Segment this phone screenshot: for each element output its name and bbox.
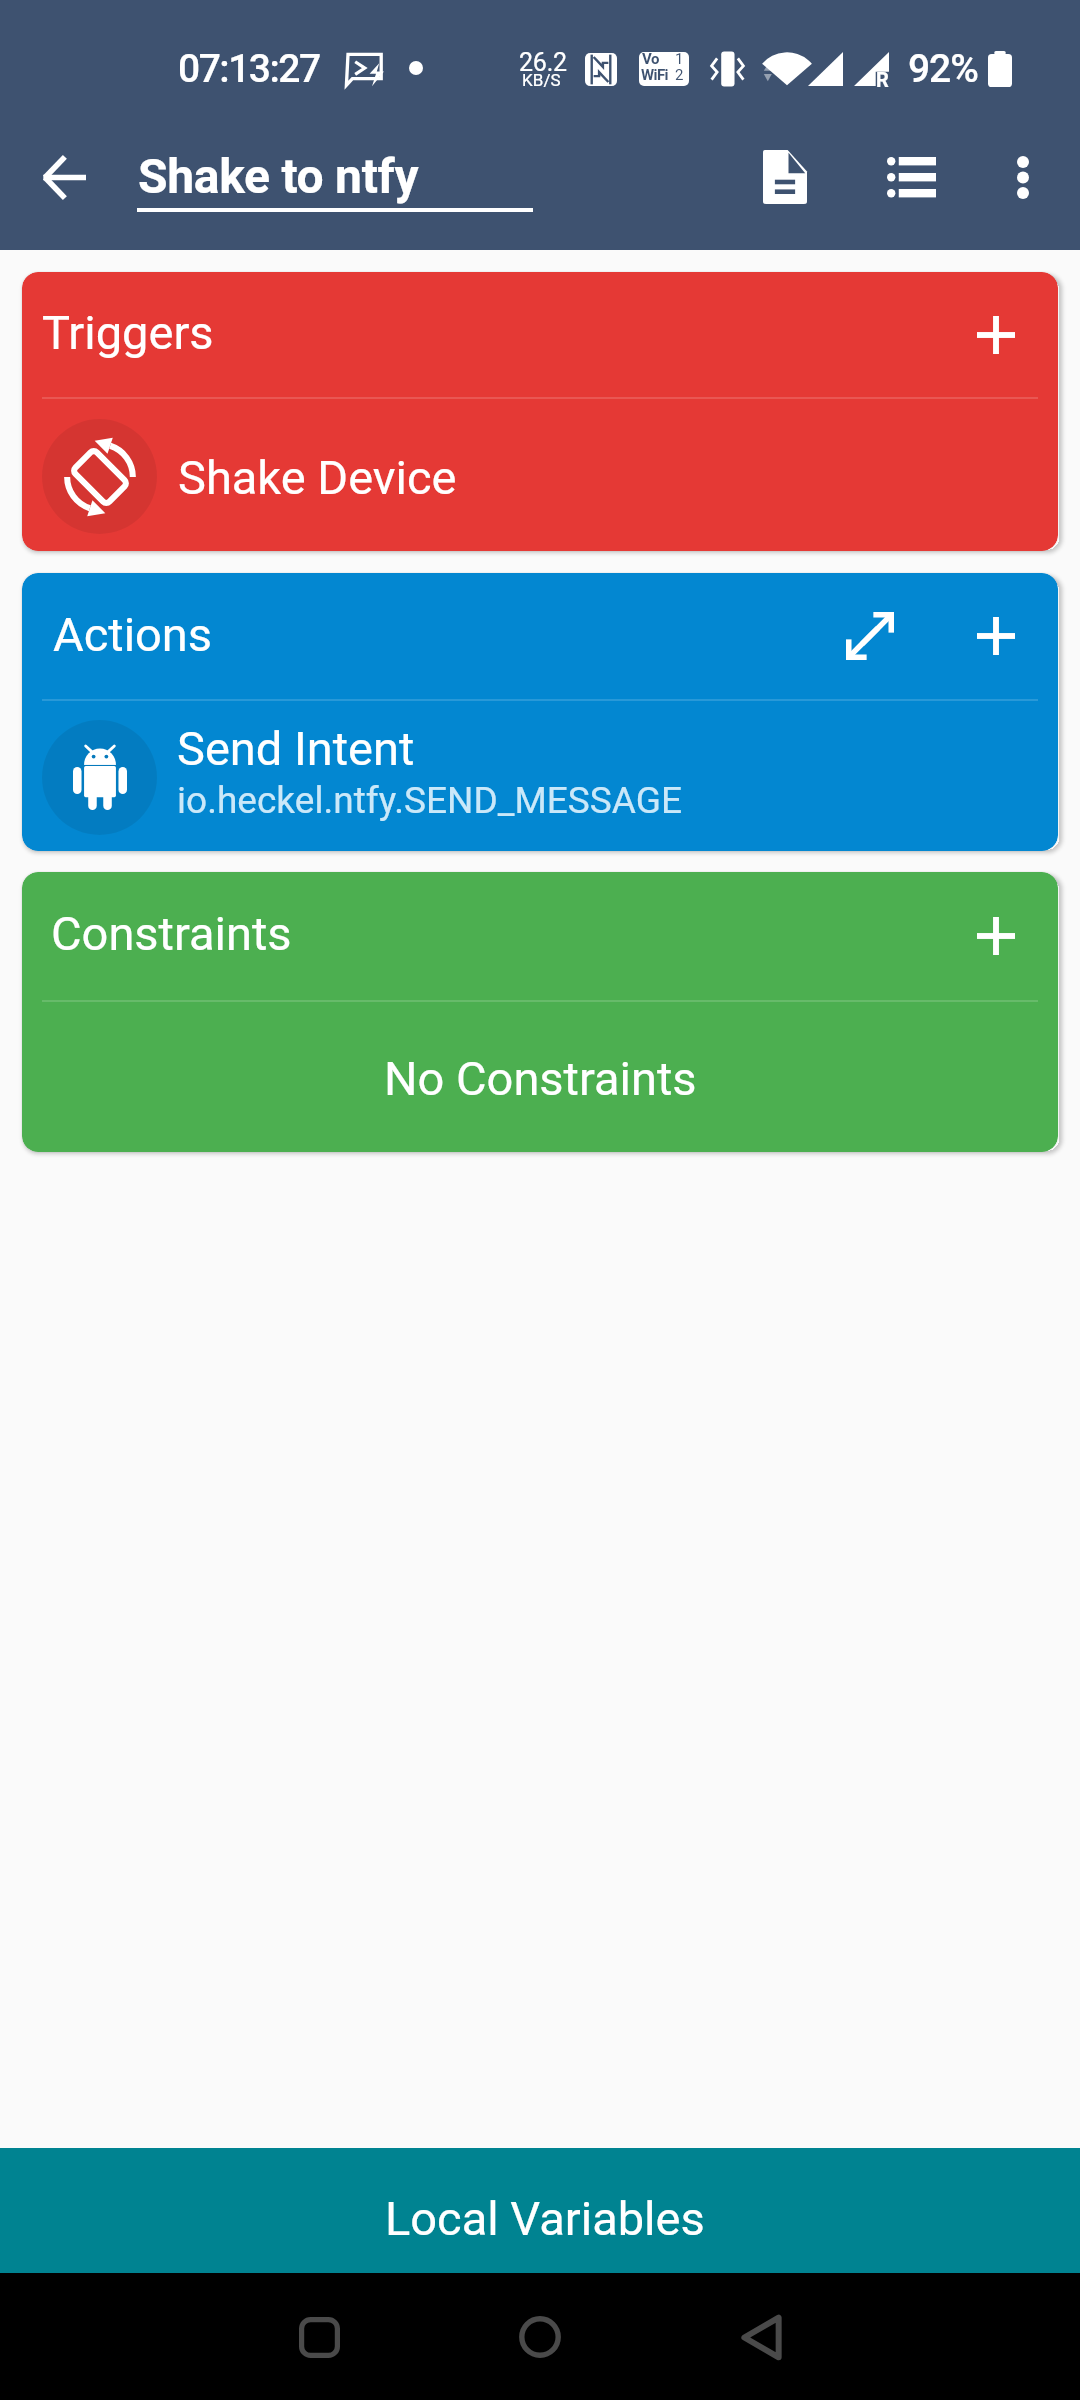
button[interactable]: Add [957, 897, 1035, 975]
staticText: Local Variables [385, 2191, 705, 2246]
staticText: io.heckel.ntfy.SEND_MESSAGE [177, 779, 683, 822]
button[interactable]: Send Intent [22, 701, 1058, 851]
button[interactable]: Navigate up [14, 127, 114, 227]
button[interactable]: Add [957, 597, 1035, 675]
button[interactable]: Back [711, 2287, 811, 2387]
staticText: WiFi [641, 66, 668, 84]
button[interactable]: Expand actions [831, 597, 909, 675]
button[interactable]: Action log [861, 127, 961, 227]
staticText: Actions [53, 607, 213, 662]
button[interactable]: Shake Device [22, 399, 1058, 551]
staticText: 1 [675, 50, 684, 68]
staticText: R [876, 68, 889, 91]
staticText: 92% [908, 46, 978, 92]
staticText: No Constraints [384, 1051, 697, 1106]
button[interactable]: Local Variables [0, 2148, 1080, 2273]
staticText: Shake to ntfy [138, 148, 419, 204]
staticText: Triggers [42, 305, 214, 360]
button[interactable]: Home [490, 2287, 590, 2387]
staticText: KB/S [522, 70, 561, 90]
staticText: 07:13:27 [178, 46, 320, 92]
staticText: Send Intent [177, 721, 415, 776]
button[interactable]: Notes [735, 127, 835, 227]
staticText: 2 [675, 66, 684, 84]
staticText: Constraints [51, 906, 292, 961]
staticText: Vo [642, 50, 660, 68]
button[interactable]: Recent apps [269, 2287, 369, 2387]
button[interactable]: More options [973, 127, 1073, 227]
button[interactable]: Add [957, 296, 1035, 374]
button[interactable]: No Constraints [22, 1002, 1058, 1152]
staticText: 26.2 [519, 48, 567, 77]
staticText: Shake Device [178, 450, 457, 505]
